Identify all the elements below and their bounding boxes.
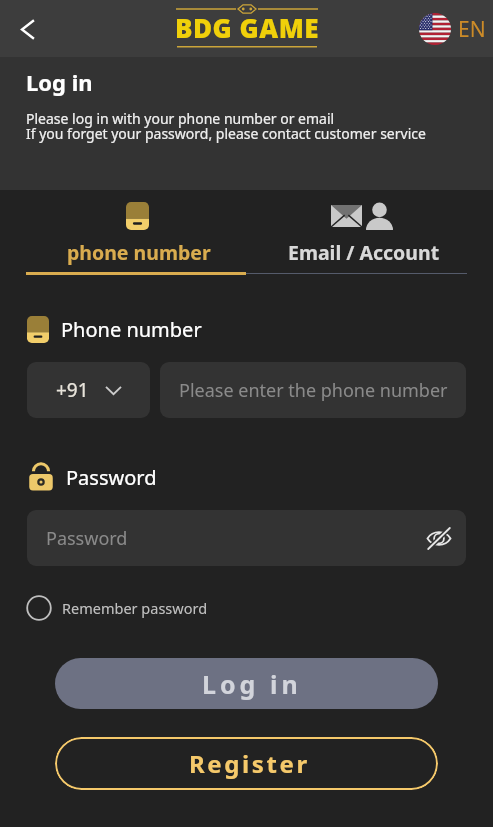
staticText: Register <box>189 747 310 780</box>
staticText: phone number <box>67 239 211 266</box>
button[interactable]: Back <box>5 7 49 51</box>
staticText: Email / Account <box>288 239 440 266</box>
staticText: Log in <box>202 667 302 701</box>
staticText: Password <box>66 464 157 491</box>
staticText: Log in <box>26 67 93 97</box>
staticText: Please enter the phone number <box>179 378 448 403</box>
button[interactable]: Language EN <box>419 13 486 45</box>
staticText: BDG GAME <box>175 10 320 45</box>
button[interactable]: +91 <box>27 362 150 418</box>
button[interactable]: Toggle password visibility <box>421 520 457 556</box>
staticText: Phone number <box>61 316 202 343</box>
button[interactable]: phone number <box>26 190 246 270</box>
staticText: Remember password <box>62 598 208 618</box>
button[interactable]: BDG GAME <box>167 0 327 57</box>
button[interactable]: Remember password <box>26 595 208 621</box>
staticText: EN <box>458 15 486 44</box>
button[interactable]: Email / Account <box>246 190 467 270</box>
staticText: Password <box>46 526 128 551</box>
button[interactable]: Register <box>55 737 438 790</box>
button[interactable]: Please enter the phone number <box>160 362 466 418</box>
button[interactable]: Log in <box>55 658 438 709</box>
button[interactable]: Password <box>27 510 466 566</box>
staticText: Please log in with your phone number or … <box>26 109 426 143</box>
staticText: +91 <box>56 377 89 403</box>
